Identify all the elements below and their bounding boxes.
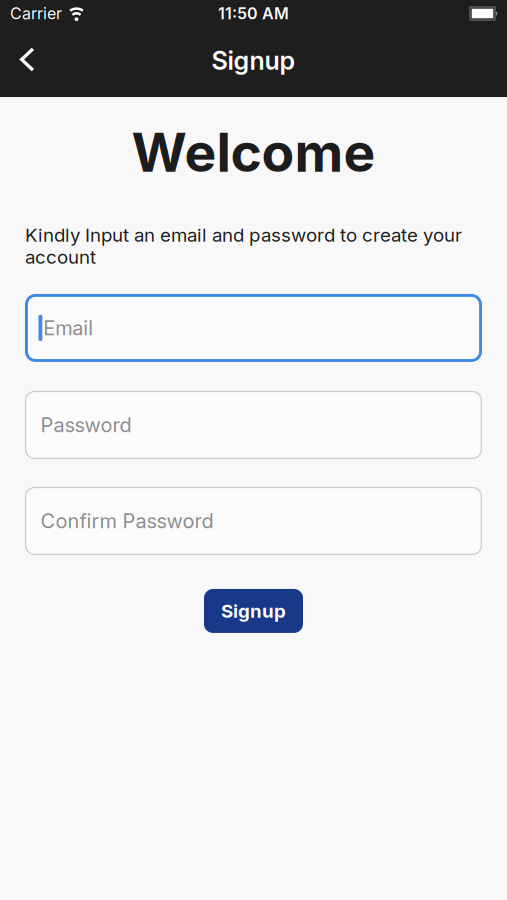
staticText: Signup	[211, 46, 295, 75]
staticText: 11:50 AM	[218, 4, 289, 23]
staticText: Signup	[221, 600, 286, 622]
button[interactable]: Email	[25, 294, 482, 362]
button[interactable]: Confirm Password	[25, 487, 482, 555]
staticText: Welcome	[131, 121, 375, 184]
staticText: Carrier	[10, 4, 62, 23]
staticText: Email	[43, 316, 93, 340]
button[interactable]	[0, 43, 34, 84]
button[interactable]: Password	[25, 391, 482, 459]
staticText: Confirm Password	[40, 509, 213, 533]
staticText: Kindly Input an email and password to cr…	[25, 224, 462, 268]
button[interactable]: Signup	[204, 589, 303, 633]
staticText: Password	[40, 413, 131, 437]
